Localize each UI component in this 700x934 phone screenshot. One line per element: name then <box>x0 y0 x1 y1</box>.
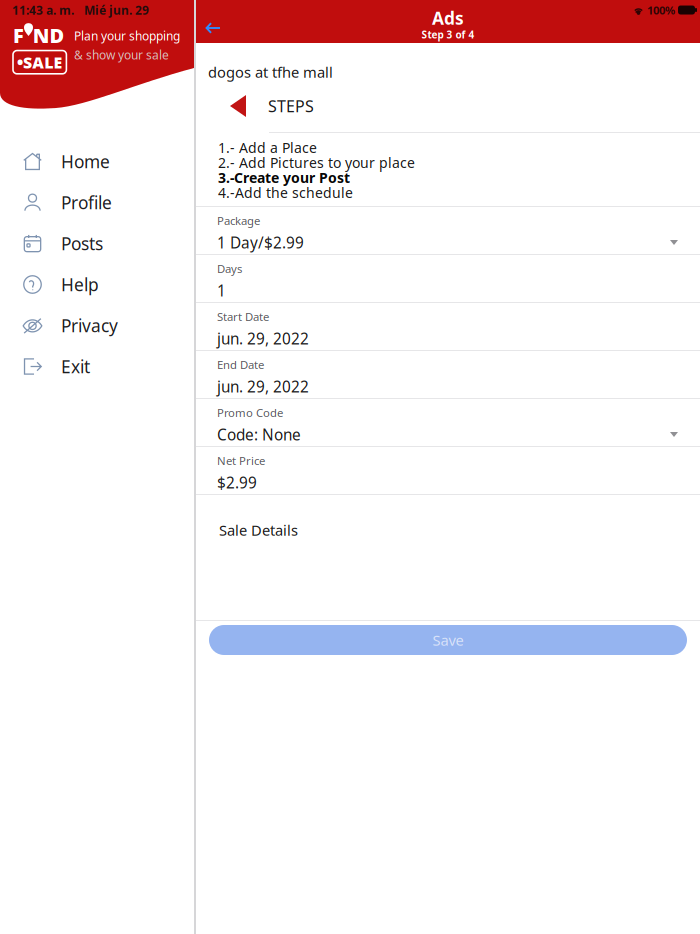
staticText: Sale Details <box>219 520 298 540</box>
staticText: End Date <box>217 357 264 372</box>
button[interactable]: Package <box>196 207 700 255</box>
staticText: Exit <box>61 355 90 378</box>
staticText: jun. 29, 2022 <box>217 328 309 349</box>
button[interactable]: Net Price <box>196 447 700 495</box>
button[interactable]: Help <box>0 264 194 305</box>
staticText: Help <box>61 273 99 296</box>
staticText: Step 3 of 4 <box>421 28 474 41</box>
staticText: Net Price <box>217 453 265 468</box>
staticText: Promo Code <box>217 405 283 420</box>
button[interactable]: Exit <box>0 346 194 387</box>
button[interactable]: Profile <box>0 182 194 223</box>
staticText: $2.99 <box>217 472 257 493</box>
staticText: 1 Day/$2.99 <box>217 232 304 253</box>
button[interactable]: End Date <box>196 351 700 399</box>
button[interactable]: Days <box>196 255 700 303</box>
staticText: •SALE <box>17 52 62 73</box>
staticText: & show your sale <box>74 47 169 63</box>
staticText: 100% <box>647 2 675 17</box>
button[interactable]: Posts <box>0 223 194 264</box>
staticText: dogos at tfhe mall <box>208 62 333 82</box>
staticText: Profile <box>61 191 112 214</box>
staticText: Save <box>432 630 463 650</box>
staticText: Package <box>217 213 260 228</box>
staticText: Posts <box>61 232 103 255</box>
staticText: Code: None <box>217 424 301 445</box>
staticText: Days <box>217 261 242 276</box>
staticText: Ads <box>432 6 464 29</box>
button[interactable]: Home <box>0 141 194 182</box>
staticText: F ND <box>13 22 64 49</box>
staticText: 3.-Create your Post <box>218 168 350 187</box>
staticText: Home <box>61 150 110 173</box>
staticText: 4.-Add the schedule <box>218 183 353 202</box>
staticText: Plan your shopping <box>74 28 180 44</box>
staticText: Privacy <box>61 314 118 337</box>
staticText: jun. 29, 2022 <box>217 376 309 397</box>
staticText: Start Date <box>217 309 269 324</box>
staticText: 2.- Add Pictures to your place <box>218 153 415 172</box>
button[interactable]: Start Date <box>196 303 700 351</box>
staticText: 11:43 a. m. <box>12 2 74 18</box>
button[interactable]: Promo Code <box>196 399 700 447</box>
button[interactable]: Back <box>196 15 230 41</box>
staticText: Mié jun. 29 <box>84 2 149 18</box>
staticText: STEPS <box>268 95 314 117</box>
staticText: 1 <box>217 280 226 301</box>
button[interactable]: Save <box>209 625 687 655</box>
button[interactable]: Privacy <box>0 305 194 346</box>
staticText: 1.- Add a Place <box>218 138 317 157</box>
